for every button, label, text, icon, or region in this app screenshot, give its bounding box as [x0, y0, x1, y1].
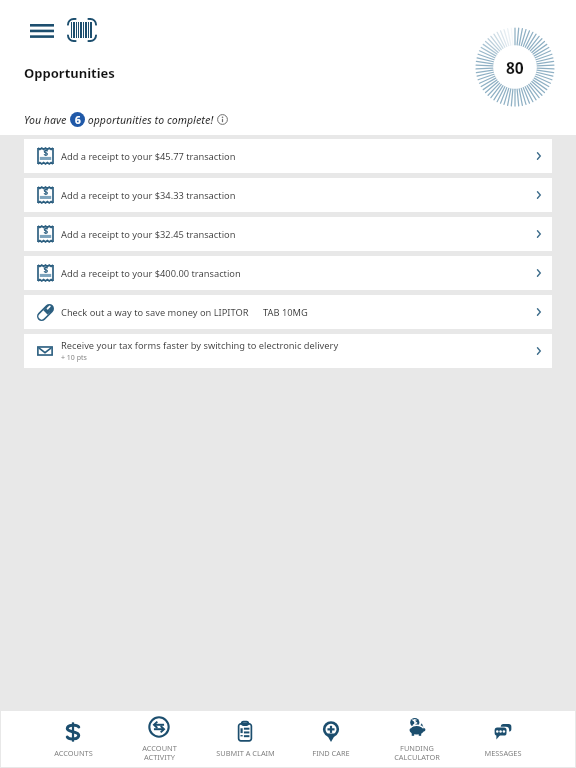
staticText: Opportunities — [24, 64, 115, 82]
staticText: Add a receipt to your $45.77 transaction — [61, 150, 236, 163]
button[interactable]: FUNDING CALCULATOR — [374, 711, 460, 767]
button[interactable]: SUBMIT A CLAIM — [202, 711, 288, 767]
staticText: opportunities to complete! — [85, 113, 217, 127]
staticText: MESSAGES — [484, 748, 522, 758]
staticText: ACCOUNTS — [54, 748, 93, 758]
button[interactable]: FIND CARE — [288, 711, 374, 767]
staticText: + 10 pts — [61, 353, 87, 363]
staticText: ACCOUNT ACTIVITY — [142, 743, 177, 762]
button[interactable]: Check out a way to save money on LIPITOR… — [24, 295, 552, 329]
button[interactable]: Add a receipt to your $45.77 transaction — [24, 139, 552, 173]
staticText: 6 — [75, 113, 81, 127]
button[interactable]: Add a receipt to your $32.45 transaction — [24, 217, 552, 251]
button[interactable]: ACCOUNTS — [30, 711, 116, 767]
staticText: Add a receipt to your $32.45 transaction — [61, 228, 236, 241]
staticText: Add a receipt to your $400.00 transactio… — [61, 267, 241, 280]
button[interactable]: Add a receipt to your $34.33 transaction — [24, 178, 552, 212]
staticText: FIND CARE — [312, 748, 350, 758]
staticText: SUBMIT A CLAIM — [216, 748, 275, 758]
button[interactable]: Menu — [24, 13, 60, 49]
staticText: Check out a way to save money on LIPITOR… — [61, 306, 308, 319]
staticText: Add a receipt to your $34.33 transaction — [61, 189, 236, 202]
button[interactable]: ACCOUNT ACTIVITY — [116, 711, 202, 767]
staticText: 80 — [506, 57, 524, 78]
button[interactable]: Scan barcode — [64, 12, 100, 48]
button[interactable]: Info — [217, 114, 228, 125]
staticText: You have — [24, 113, 70, 127]
staticText: Receive your tax forms faster by switchi… — [61, 339, 339, 352]
button[interactable]: MESSAGES — [460, 711, 546, 767]
button[interactable]: Receive your tax forms faster by switchi… — [24, 334, 552, 368]
staticText: FUNDING CALCULATOR — [394, 743, 440, 762]
button[interactable]: Add a receipt to your $400.00 transactio… — [24, 256, 552, 290]
